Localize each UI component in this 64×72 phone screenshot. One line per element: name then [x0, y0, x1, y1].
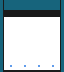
- button[interactable]: [46, 62, 60, 70]
- button[interactable]: [18, 62, 32, 70]
- button[interactable]: [32, 62, 46, 70]
- button[interactable]: [4, 62, 18, 70]
